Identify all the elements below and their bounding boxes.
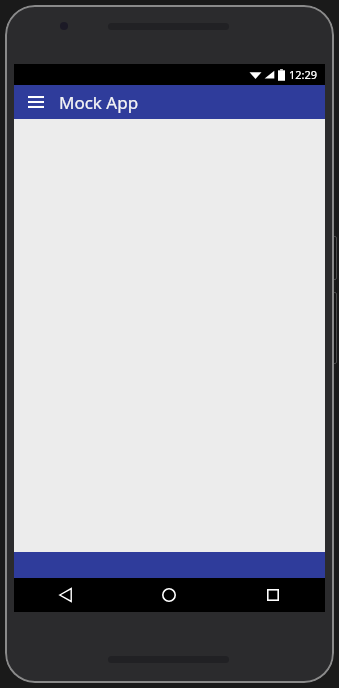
button[interactable]: Home [117, 578, 221, 612]
button[interactable]: Open navigation drawer [25, 91, 47, 113]
button[interactable]: Back [14, 578, 117, 612]
staticText: 12:29 [289, 67, 318, 82]
button[interactable]: Recent apps [221, 578, 325, 612]
staticText: Mock App [59, 91, 139, 114]
